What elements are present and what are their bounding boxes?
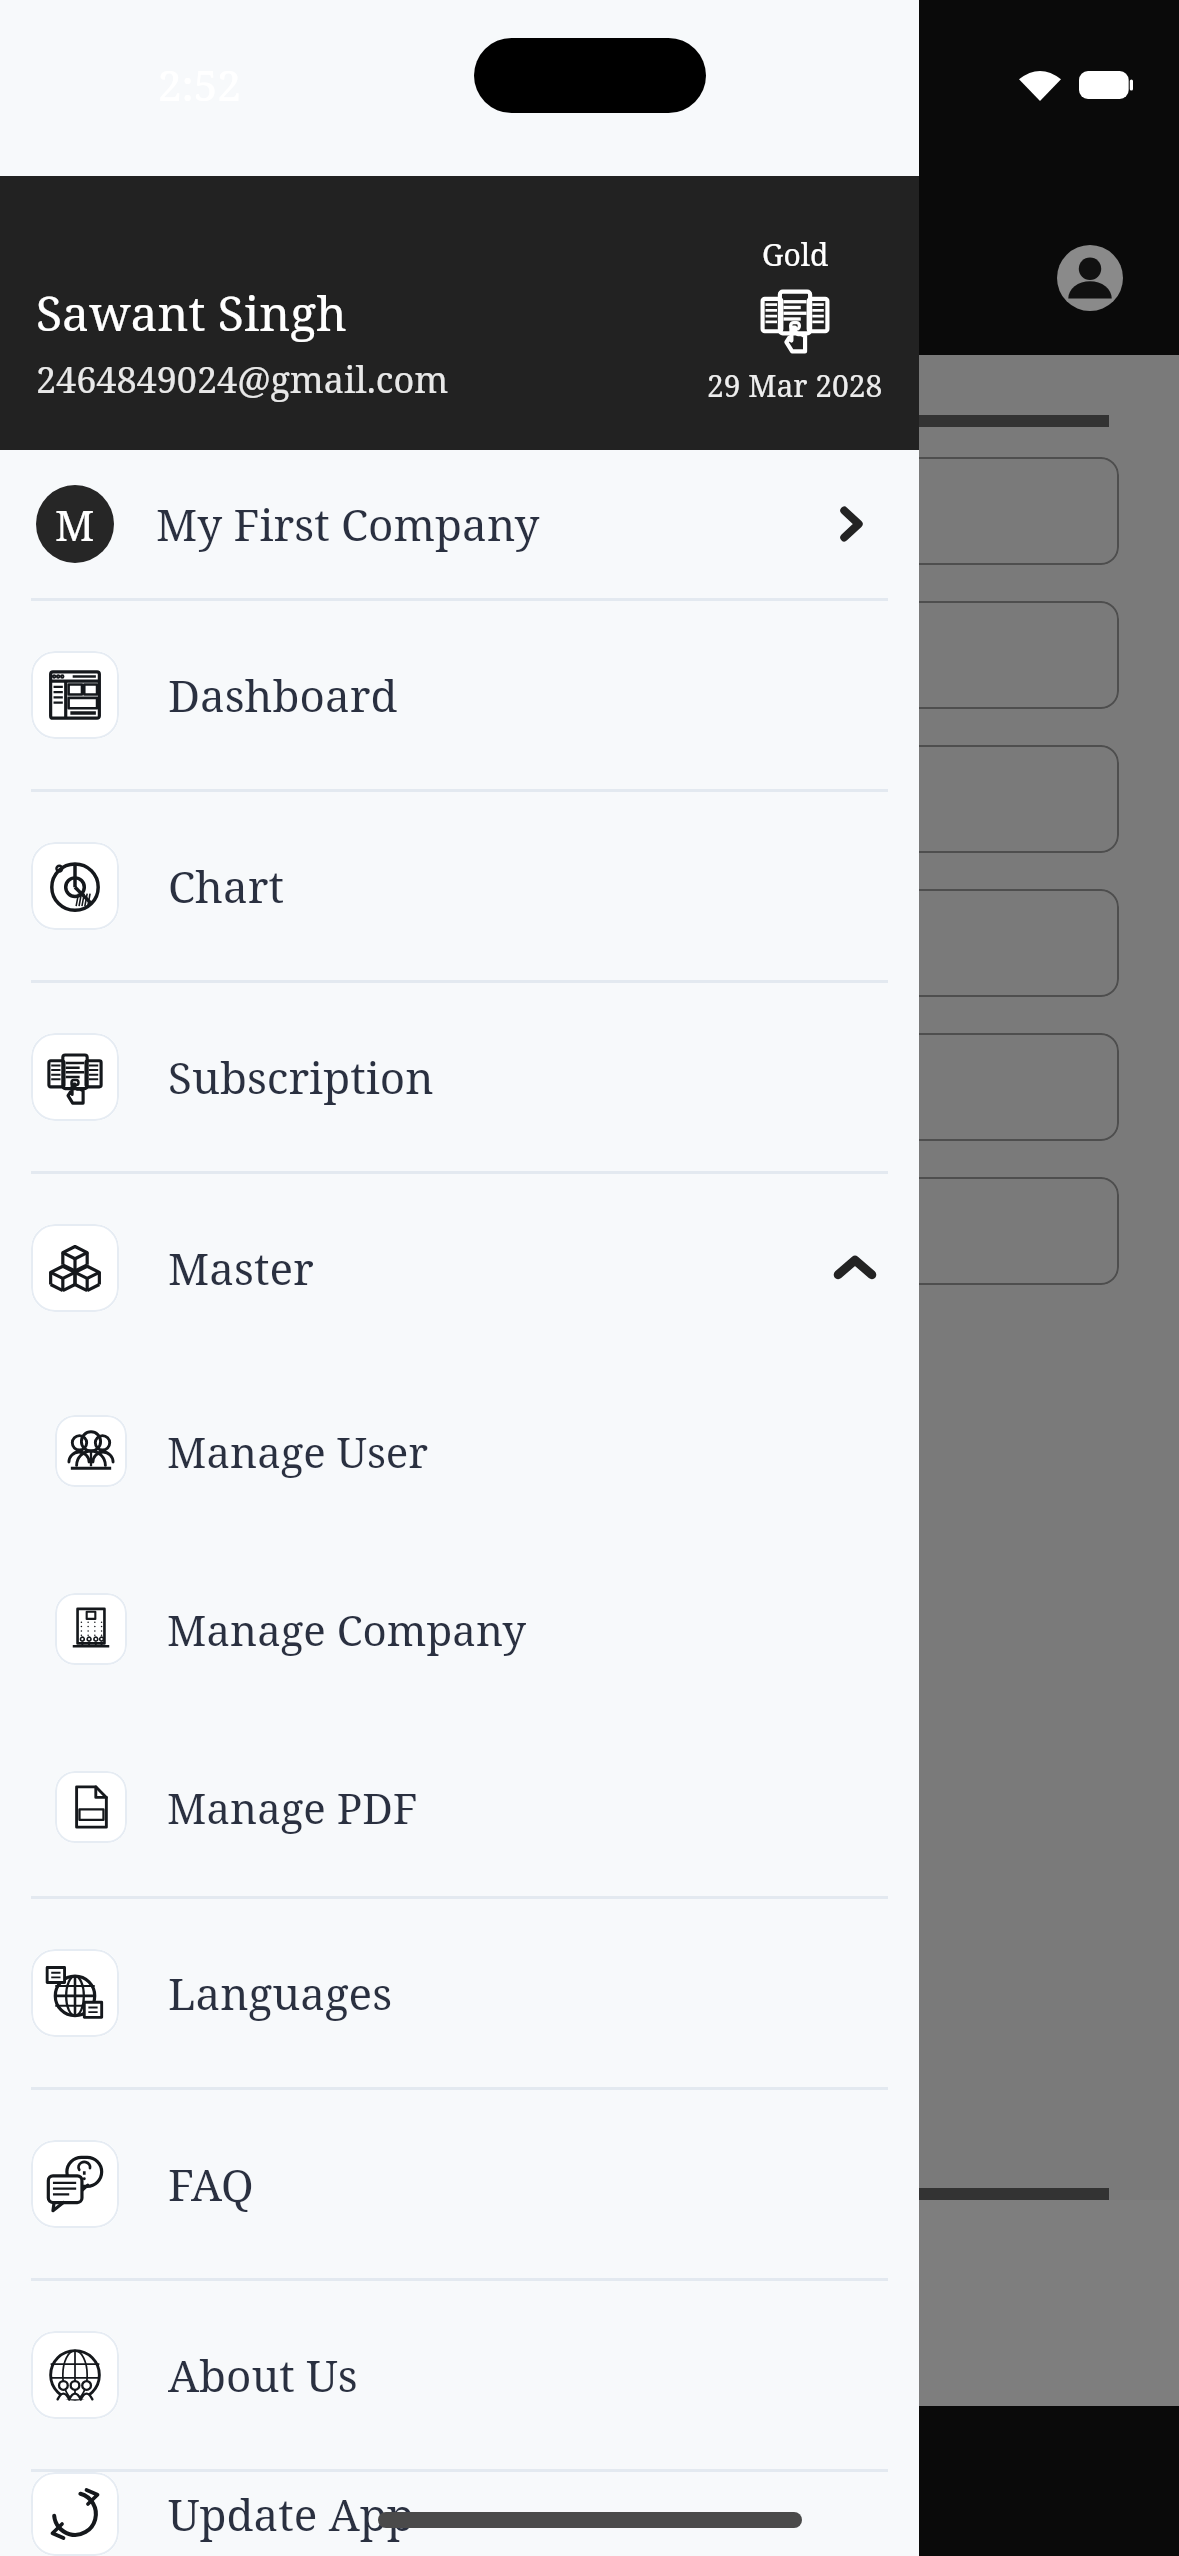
other: Open company <box>827 496 875 552</box>
button[interactable]: M <box>0 450 919 598</box>
staticText: Manage PDF <box>167 1779 418 1836</box>
button[interactable]: Update App <box>0 2472 919 2556</box>
button[interactable]: Manage User <box>0 1362 919 1540</box>
button[interactable]: Languages <box>0 1899 919 2087</box>
staticText: Subscription <box>168 1047 919 1107</box>
button[interactable]: Manage Company <box>0 1540 919 1718</box>
button[interactable]: Subscription <box>0 983 919 1171</box>
staticText: 2464849024@gmail.com <box>36 355 449 404</box>
staticText: Languages <box>168 1963 919 2023</box>
staticText: About Us <box>168 2345 919 2405</box>
staticText: FAQ <box>168 2154 919 2214</box>
staticText: Master <box>168 1238 827 1298</box>
button[interactable]: Master <box>0 1174 919 1362</box>
button[interactable]: Profile <box>1057 245 1123 311</box>
staticText: My First Company <box>156 494 827 554</box>
staticText: Dashboard <box>168 665 919 725</box>
staticText: Gold <box>762 234 829 275</box>
button[interactable]: About Us <box>0 2281 919 2469</box>
staticText: M <box>55 496 95 553</box>
staticText: Manage User <box>167 1423 429 1480</box>
button[interactable]: Chart <box>0 792 919 980</box>
other: Collapse <box>827 1240 883 1296</box>
staticText: Chart <box>168 856 919 916</box>
staticText: Manage Company <box>167 1601 526 1658</box>
staticText: 29 Mar 2028 <box>707 365 883 406</box>
staticText: Update App <box>168 2484 919 2544</box>
button[interactable]: Manage PDF <box>0 1718 919 1896</box>
button[interactable]: Dashboard <box>0 601 919 789</box>
staticText: Sawant Singh <box>36 280 347 345</box>
button[interactable]: Sawant Singh <box>0 176 919 450</box>
button[interactable]: FAQ <box>0 2090 919 2278</box>
